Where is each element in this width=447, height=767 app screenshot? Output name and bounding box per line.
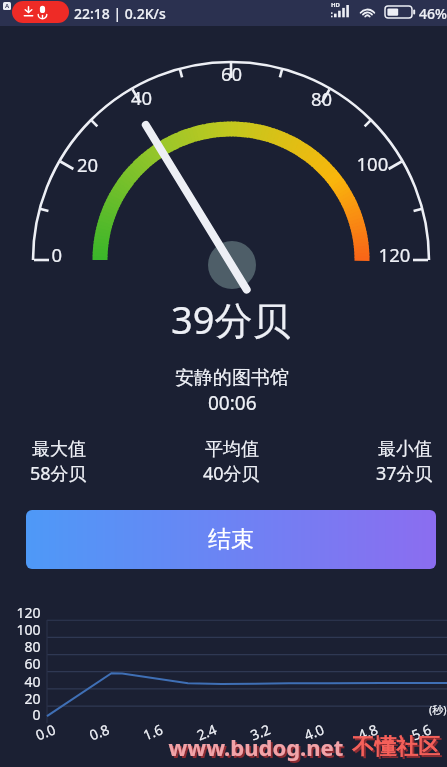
staticText: 平均值 [205, 438, 259, 461]
staticText: 39分贝 [171, 293, 291, 345]
staticText: 46% [419, 4, 447, 23]
button[interactable]: Recording [12, 1, 69, 23]
staticText: 58分贝 [30, 461, 87, 486]
staticText: 安静的图书馆 [175, 366, 289, 390]
staticText: 40分贝 [203, 461, 260, 486]
staticText: 00:06 [208, 390, 257, 416]
staticText: A [5, 2, 10, 10]
staticText: 最大值 [32, 438, 86, 461]
staticText: 结束 [208, 525, 254, 554]
staticText: 22:18 | 0.2K/s [74, 4, 166, 23]
staticText: 37分贝 [376, 461, 433, 486]
staticText: 最小值 [378, 438, 432, 461]
button[interactable]: 结束 [26, 510, 436, 569]
staticText: HD [331, 1, 340, 9]
